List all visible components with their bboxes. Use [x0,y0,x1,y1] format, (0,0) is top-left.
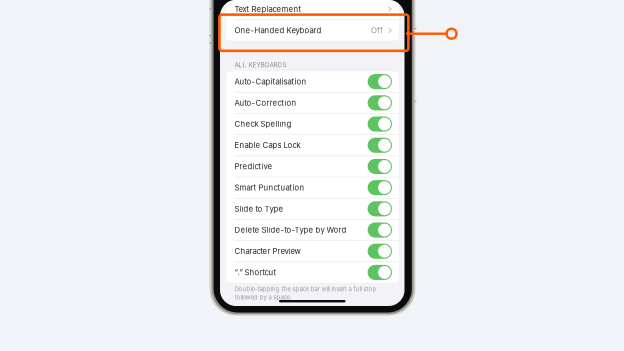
button[interactable]: Delete Slide-to-Type by Word [226,220,399,240]
staticText: Character Preview [235,246,301,256]
button[interactable]: One-Handed Keyboard [226,20,399,41]
button[interactable]: Auto-Correction [226,92,399,113]
staticText: Check Spelling [235,119,292,129]
staticText: Delete Slide-to-Type by Word [235,225,347,235]
button[interactable]: Slide to Type [226,198,399,219]
button[interactable]: Smart Punctuation [226,177,399,198]
staticText: Text Replacement [235,4,302,14]
staticText: One-Handed Keyboard [235,26,322,35]
staticText: Auto-Capitalisation [235,77,307,86]
staticText: “.” Shortcut [235,268,277,277]
button[interactable]: Predictive [226,156,399,177]
staticText: Slide to Type [235,204,284,213]
button[interactable]: Auto-Capitalisation [226,71,399,92]
button[interactable]: Check Spelling [226,114,399,134]
staticText: ALL KEYBOARDS [235,61,287,69]
button[interactable]: Character Preview [226,241,399,261]
staticText: Off [371,26,383,35]
button[interactable]: Text Replacement [226,0,399,19]
button[interactable]: “.” Shortcut [226,262,399,283]
staticText: Smart Punctuation [235,183,305,192]
staticText: Predictive [235,162,273,171]
staticText: Enable Caps Lock [235,140,301,150]
button[interactable]: Enable Caps Lock [226,135,399,155]
staticText: Auto-Correction [235,98,297,107]
staticText: Double-tapping the space bar will insert… [235,285,377,293]
staticText: followed by a space. [235,294,292,301]
